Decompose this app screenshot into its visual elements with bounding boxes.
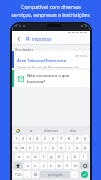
staticText: 8 — [68, 136, 71, 141]
button[interactable]: 6 — [50, 135, 57, 142]
button[interactable]: Google — [15, 128, 20, 133]
button[interactable]: g — [48, 153, 55, 160]
button[interactable]: a — [15, 153, 23, 160]
staticText: b — [58, 163, 61, 168]
staticText: . — [74, 172, 76, 177]
staticText: x — [34, 163, 37, 168]
staticText: 0 — [84, 136, 87, 141]
staticText: z — [27, 163, 29, 168]
button[interactable]: v — [48, 162, 55, 169]
staticText: w — [21, 145, 25, 150]
button[interactable]: 1 — [13, 135, 19, 142]
staticText: i — [69, 145, 71, 150]
button[interactable]: o — [74, 144, 81, 151]
button[interactable]: Emoji — [32, 171, 39, 178]
staticText: s — [27, 154, 29, 159]
staticText: 1 — [15, 136, 18, 141]
staticText: 5 — [44, 136, 47, 141]
button[interactable]: c — [40, 162, 47, 169]
button[interactable]: 0 — [82, 135, 89, 142]
button[interactable]: Apagar — [80, 162, 89, 169]
button[interactable]: 3 — [27, 135, 33, 142]
staticText: 9 — [76, 136, 79, 141]
button[interactable]: t — [42, 144, 49, 151]
staticText: Compatível com diversos — [21, 4, 81, 11]
staticText: português — [48, 173, 63, 177]
button[interactable]: e — [27, 144, 33, 151]
staticText: 3 — [29, 136, 32, 141]
staticText: l — [83, 154, 85, 159]
button[interactable]: l — [80, 153, 87, 160]
staticText: o — [76, 145, 79, 150]
staticText: impostos — [32, 36, 52, 42]
button[interactable]: u — [58, 144, 65, 151]
staticText: d — [34, 154, 37, 159]
button[interactable]: 4 — [34, 135, 41, 142]
button[interactable]: k — [72, 153, 79, 160]
staticText: 2 — [22, 136, 25, 141]
button[interactable]: m — [72, 162, 79, 169]
staticText: k — [74, 154, 77, 159]
staticText: a — [18, 154, 21, 159]
staticText: serviços, empresas e instituições — [11, 12, 90, 19]
staticText: q — [15, 145, 18, 150]
button[interactable]: Não encontrou o que buscava? — [12, 70, 90, 87]
staticText: r — [37, 145, 39, 150]
button[interactable]: r — [34, 144, 41, 151]
button[interactable]: b — [56, 162, 63, 169]
button[interactable]: Voltar — [15, 35, 23, 43]
staticText: v — [50, 163, 53, 168]
staticText: t — [45, 145, 47, 150]
button[interactable]: , — [24, 171, 31, 178]
button[interactable]: q — [13, 144, 19, 151]
staticText: Área Tributos/Financeiro — [17, 58, 67, 64]
staticText: dia — [70, 128, 76, 133]
staticText: 4 — [36, 136, 39, 141]
staticText: Serviços Fiscais de Processamento de Dad… — [17, 65, 87, 68]
staticText: , — [27, 172, 29, 177]
staticText: p — [84, 145, 87, 150]
button[interactable]: . — [71, 171, 78, 178]
button[interactable]: 7 — [58, 135, 65, 142]
button[interactable]: p — [82, 144, 89, 151]
staticText: j — [67, 154, 69, 159]
staticText: ver mais — [75, 54, 87, 58]
staticText: f — [43, 154, 45, 159]
button[interactable]: 8 — [66, 135, 73, 142]
button[interactable]: Espaço — [40, 171, 70, 178]
staticText: 7 — [60, 136, 63, 141]
button[interactable]: f — [40, 153, 47, 160]
staticText: c — [43, 163, 45, 168]
staticText: e — [29, 145, 32, 150]
button[interactable]: s — [24, 153, 31, 160]
staticText: Resultados — [15, 47, 34, 51]
staticText: h — [58, 154, 61, 159]
button[interactable]: 2 — [20, 135, 26, 142]
button[interactable]: d — [32, 153, 39, 160]
button[interactable]: 9 — [74, 135, 81, 142]
button[interactable]: impostos — [26, 34, 87, 43]
staticText: 6 — [52, 136, 55, 141]
button[interactable]: y — [50, 144, 57, 151]
button[interactable]: Enviar — [81, 171, 88, 178]
staticText: Não encontrou o que buscava? — [27, 73, 87, 85]
staticText: a — [30, 128, 33, 133]
button[interactable]: w — [20, 144, 26, 151]
staticText: últimos — [44, 128, 59, 133]
staticText: n — [66, 163, 69, 168]
button[interactable]: z — [24, 162, 31, 169]
button[interactable]: j — [64, 153, 71, 160]
button[interactable]: x — [32, 162, 39, 169]
button[interactable]: Shift — [13, 162, 23, 169]
staticText: y — [52, 145, 55, 150]
button[interactable]: i — [66, 144, 73, 151]
button[interactable]: ?123 — [13, 171, 23, 178]
button[interactable]: 5 — [42, 135, 49, 142]
button[interactable]: ver mais — [12, 51, 90, 68]
staticText: m — [74, 163, 78, 168]
staticText: u — [60, 145, 63, 150]
button[interactable]: h — [56, 153, 63, 160]
staticText: g — [50, 154, 53, 159]
button[interactable]: n — [64, 162, 71, 169]
